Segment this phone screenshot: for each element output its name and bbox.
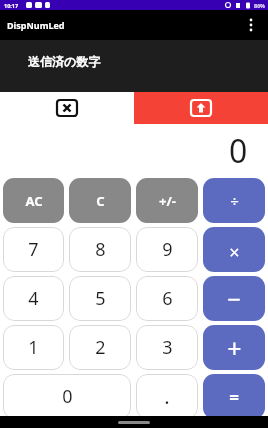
staticText: +: [227, 331, 242, 365]
button[interactable]: 8: [69, 227, 131, 272]
staticText: 3: [162, 335, 173, 360]
staticText: 8: [95, 237, 106, 262]
staticText: 86%: [254, 2, 265, 9]
staticText: ×: [229, 240, 240, 265]
staticText: =: [229, 386, 239, 409]
button[interactable]: 7: [3, 227, 64, 272]
button[interactable]: [241, 15, 261, 35]
staticText: 1: [28, 335, 39, 360]
button[interactable]: [0, 92, 134, 124]
staticText: 0: [62, 384, 73, 409]
staticText: 9: [162, 237, 173, 262]
staticText: 5: [95, 286, 106, 311]
button[interactable]: +/-: [136, 178, 198, 223]
staticText: .: [164, 383, 170, 410]
staticText: 6: [162, 286, 173, 311]
staticText: +/-: [159, 192, 176, 210]
button[interactable]: ÷: [203, 178, 265, 223]
staticText: 0: [229, 129, 248, 173]
staticText: ÷: [230, 191, 239, 211]
button[interactable]: 1: [3, 325, 64, 370]
button[interactable]: 6: [136, 276, 198, 321]
button[interactable]: AC: [3, 178, 64, 223]
staticText: 10:17: [4, 2, 19, 9]
button[interactable]: 0: [3, 374, 131, 419]
button[interactable]: .: [136, 374, 198, 419]
button[interactable]: ×: [203, 227, 265, 272]
button[interactable]: =: [203, 374, 265, 419]
button[interactable]: 3: [136, 325, 198, 370]
button[interactable]: 5: [69, 276, 131, 321]
staticText: 7: [28, 237, 39, 262]
button[interactable]: [134, 92, 268, 124]
button[interactable]: 4: [3, 276, 64, 321]
staticText: 2: [95, 335, 106, 360]
button[interactable]: 2: [69, 325, 131, 370]
staticText: DispNumLed: [7, 19, 65, 31]
staticText: AC: [25, 192, 43, 210]
staticText: −: [227, 282, 241, 315]
staticText: C: [96, 192, 105, 210]
button[interactable]: +: [203, 325, 265, 370]
staticText: 送信済の数字: [28, 54, 101, 69]
button[interactable]: 9: [136, 227, 198, 272]
staticText: 4: [28, 286, 39, 311]
button[interactable]: C: [69, 178, 131, 223]
button[interactable]: −: [203, 276, 265, 321]
